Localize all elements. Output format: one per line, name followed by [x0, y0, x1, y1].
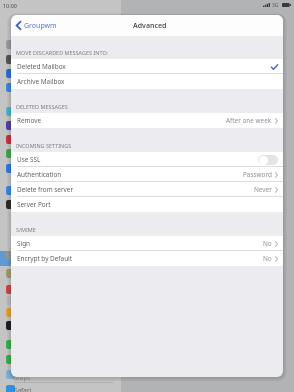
staticText: After one week — [226, 116, 272, 125]
staticText: No — [263, 254, 272, 263]
staticText: Delete from server — [17, 185, 74, 194]
button[interactable]: Messages — [6, 321, 15, 330]
staticText: Remove — [17, 116, 42, 125]
staticText: 10:00 — [3, 2, 17, 9]
button[interactable]: Delete from server — [11, 182, 283, 197]
button[interactable]: Calendar — [6, 269, 15, 278]
button[interactable]: Groupwm — [16, 15, 57, 36]
staticText: Deleted Mailbox — [17, 62, 66, 71]
button[interactable]: Voice Memos — [6, 308, 15, 317]
staticText: Safari — [14, 386, 32, 392]
staticText: Sign — [17, 239, 31, 248]
button[interactable]: Siri and Search — [6, 107, 15, 116]
button[interactable]: Wallpaper — [6, 83, 15, 92]
staticText: No — [263, 239, 272, 248]
button[interactable]: Touch ID and Passcode — [6, 121, 15, 130]
button[interactable]: General — [6, 40, 15, 49]
staticText: Encrypt by Default — [17, 254, 73, 263]
staticText: Use SSL — [17, 155, 41, 164]
staticText: Advanced — [133, 21, 167, 31]
button[interactable]: Reminders — [6, 296, 15, 305]
button[interactable]: Maps — [6, 370, 15, 379]
button[interactable]: Sign — [11, 236, 283, 251]
button[interactable]: Accessibility — [6, 69, 15, 78]
staticText: Maps — [14, 373, 31, 382]
button[interactable]: Mail — [6, 251, 15, 260]
button[interactable]: Display and Brightness — [6, 55, 15, 64]
staticText: MOVE DISCARDED MESSAGES INTO: — [16, 49, 109, 56]
staticText: Never — [254, 185, 272, 194]
button[interactable]: Passwords and Accounts — [6, 200, 15, 209]
button[interactable]: Deleted Mailbox — [11, 59, 283, 74]
staticText: 3G — [272, 2, 279, 9]
button[interactable]: Use SSL toggle — [258, 155, 278, 165]
button[interactable]: Battery — [6, 135, 15, 144]
button[interactable]: Encrypt by Default — [11, 251, 283, 266]
button[interactable]: Use SSL — [11, 152, 283, 167]
staticText: Password — [243, 170, 272, 179]
button[interactable]: FaceTime — [6, 340, 15, 349]
button[interactable]: Wallet and Apple Pay — [6, 186, 15, 195]
button[interactable]: Privacy — [6, 149, 15, 158]
button[interactable]: Authentication — [11, 167, 283, 182]
staticText: Groupwm — [24, 21, 57, 31]
staticText: Archive Mailbox — [17, 77, 65, 86]
staticText: S/MIME — [16, 226, 36, 233]
button[interactable]: Safari — [6, 385, 15, 392]
staticText: INCOMING SETTINGS — [16, 142, 72, 149]
staticText: DELETED MESSAGES — [16, 103, 68, 110]
staticText: Authentication — [17, 170, 62, 179]
button[interactable]: iTunes and App Store — [6, 164, 15, 173]
button[interactable]: Phone — [6, 355, 15, 364]
button[interactable]: Archive Mailbox — [11, 74, 283, 89]
button[interactable]: Notes — [6, 285, 15, 294]
staticText: Server Port — [17, 200, 51, 209]
button[interactable]: Server Port — [11, 197, 283, 212]
button[interactable]: Remove — [11, 113, 283, 128]
